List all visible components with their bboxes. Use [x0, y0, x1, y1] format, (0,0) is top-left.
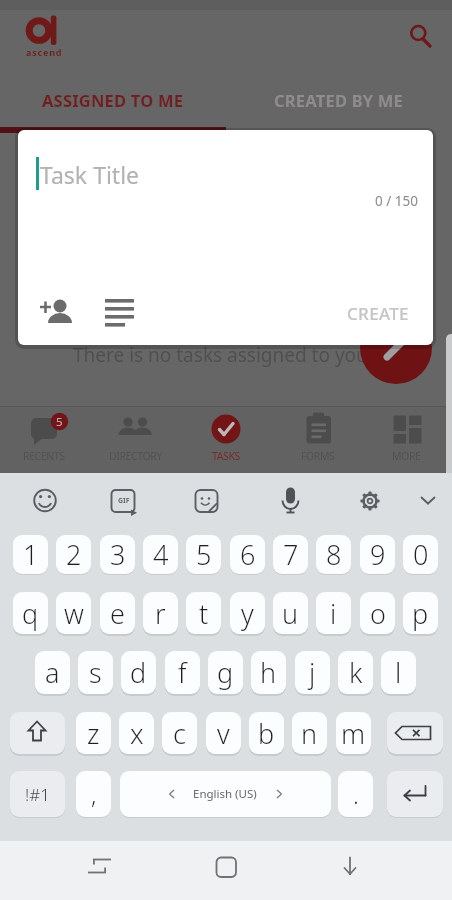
button[interactable]: !#1 — [10, 771, 65, 817]
button[interactable]: 6 — [230, 535, 265, 574]
staticText: i — [330, 595, 337, 632]
button[interactable] — [10, 712, 65, 754]
button[interactable]: ASSIGNED TO ME — [0, 78, 226, 122]
button[interactable] — [90, 405, 180, 473]
staticText: CREATED BY ME — [274, 89, 404, 111]
staticText: 5 — [56, 414, 63, 429]
button[interactable] — [186, 481, 226, 521]
button[interactable]: p — [403, 592, 438, 634]
button[interactable] — [202, 848, 250, 888]
button[interactable] — [387, 771, 443, 817]
button[interactable]: 1 — [13, 535, 48, 574]
staticText: . — [353, 778, 359, 811]
button[interactable]: . — [338, 771, 373, 817]
button[interactable]: 8 — [316, 535, 351, 574]
button[interactable] — [360, 312, 432, 384]
button[interactable]: l — [381, 651, 416, 694]
staticText: m — [341, 715, 366, 752]
button[interactable]: d — [121, 651, 156, 694]
staticText: , — [91, 778, 97, 811]
staticText: DIRECTORY — [109, 449, 162, 463]
button[interactable] — [350, 481, 390, 521]
button[interactable] — [387, 712, 443, 754]
button[interactable] — [75, 848, 123, 888]
button[interactable] — [120, 771, 331, 817]
staticText: There is no tasks assigned to you — [73, 342, 368, 368]
staticText: y — [241, 595, 254, 632]
staticText: x — [130, 715, 144, 752]
staticText: FORMS — [301, 449, 335, 463]
staticText: n — [301, 715, 318, 752]
button[interactable]: y — [230, 592, 265, 634]
button[interactable]: h — [251, 651, 286, 694]
staticText: 6 — [240, 536, 256, 573]
staticText: 4 — [153, 536, 169, 573]
button[interactable]: 9 — [360, 535, 395, 574]
button[interactable]: n — [292, 712, 327, 754]
staticText: Task Title — [40, 159, 140, 190]
button[interactable] — [93, 290, 143, 340]
staticText: w — [64, 595, 84, 632]
staticText: q — [22, 595, 39, 632]
button[interactable] — [103, 481, 143, 521]
staticText: 2 — [66, 536, 82, 573]
button[interactable] — [28, 290, 78, 340]
staticText: a — [45, 654, 60, 691]
staticText: b — [258, 715, 275, 752]
button[interactable]: c — [162, 712, 197, 754]
button[interactable]: a — [35, 651, 70, 694]
button[interactable] — [326, 848, 374, 888]
staticText: g — [217, 654, 234, 691]
staticText: 5 — [196, 536, 212, 573]
button[interactable]: s — [78, 651, 113, 694]
staticText: English (US) — [193, 786, 257, 802]
button[interactable]: CREATED BY ME — [226, 78, 452, 122]
button[interactable]: g — [208, 651, 243, 694]
button[interactable] — [270, 481, 310, 521]
staticText: 7 — [283, 536, 299, 573]
button[interactable]: u — [273, 592, 308, 634]
button[interactable]: , — [76, 771, 111, 817]
button[interactable] — [271, 405, 361, 473]
button[interactable]: CREATE — [328, 300, 428, 326]
staticText: !#1 — [25, 783, 50, 806]
button[interactable]: t — [186, 592, 221, 634]
button[interactable]: o — [360, 592, 395, 634]
button[interactable]: x — [119, 712, 154, 754]
button[interactable]: f — [165, 651, 200, 694]
staticText: CREATE — [347, 302, 409, 325]
button[interactable] — [396, 25, 440, 69]
button[interactable] — [362, 405, 452, 473]
staticText: c — [173, 715, 186, 752]
button[interactable] — [0, 405, 90, 473]
button[interactable]: z — [76, 712, 111, 754]
button[interactable]: q — [13, 592, 48, 634]
button[interactable]: 5 — [186, 535, 221, 574]
button[interactable]: r — [143, 592, 178, 634]
button[interactable]: 7 — [273, 535, 308, 574]
button[interactable] — [181, 405, 271, 473]
button[interactable] — [412, 485, 444, 517]
staticText: ascend — [26, 46, 63, 57]
button[interactable]: w — [56, 592, 91, 634]
staticText: p — [412, 595, 429, 632]
staticText: j — [309, 654, 316, 691]
button[interactable] — [25, 481, 65, 521]
button[interactable]: 4 — [143, 535, 178, 574]
staticText: h — [260, 654, 277, 691]
staticText: s — [89, 654, 102, 691]
button[interactable]: v — [206, 712, 241, 754]
button[interactable]: j — [295, 651, 330, 694]
button[interactable]: b — [249, 712, 284, 754]
button[interactable]: 3 — [100, 535, 135, 574]
button[interactable]: 2 — [56, 535, 91, 574]
staticText: 1 — [23, 536, 39, 573]
staticText: f — [178, 654, 187, 691]
button[interactable]: 0 — [403, 535, 438, 574]
button[interactable]: k — [338, 651, 373, 694]
button[interactable]: i — [316, 592, 351, 634]
staticText: TASKS — [212, 449, 240, 463]
button[interactable]: e — [100, 592, 135, 634]
button[interactable]: m — [336, 712, 371, 754]
staticText: ASSIGNED TO ME — [42, 89, 184, 111]
